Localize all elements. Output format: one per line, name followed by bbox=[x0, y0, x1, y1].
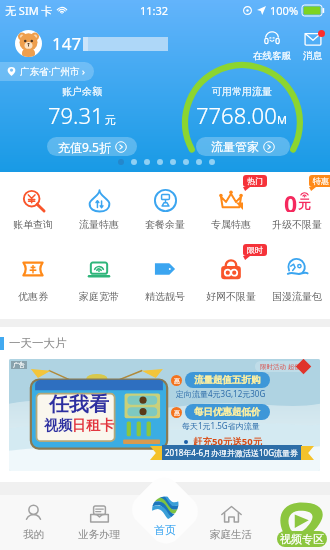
staticText: 首页 bbox=[154, 523, 176, 537]
staticText: 无 SIM 卡 bbox=[5, 3, 53, 18]
button[interactable]: 在线客服 bbox=[249, 30, 295, 62]
staticText: 充值9.5折 bbox=[58, 139, 111, 155]
other: 在线客服 bbox=[263, 30, 281, 48]
button[interactable]: 广告 bbox=[9, 359, 320, 471]
staticText: 好网不限量 bbox=[206, 290, 256, 303]
staticText: 家庭宽带 bbox=[79, 290, 119, 303]
staticText: 可用常用流量 bbox=[212, 85, 272, 98]
button[interactable]: 限时 bbox=[198, 257, 264, 303]
other: 视频专区 bbox=[276, 500, 328, 545]
staticText: 惠 bbox=[174, 409, 180, 417]
button[interactable]: 国漫流量包 bbox=[264, 257, 330, 303]
staticText: 国漫流量包 bbox=[272, 290, 322, 303]
button[interactable]: 家庭生活 bbox=[198, 495, 264, 550]
button[interactable]: 家庭宽带 bbox=[66, 257, 132, 303]
staticText: 元 bbox=[105, 113, 116, 127]
staticText: 业务办理 bbox=[78, 528, 120, 541]
staticText: 赶充50元送50元 bbox=[193, 435, 263, 448]
staticText: 元 bbox=[298, 196, 311, 212]
staticText: 账户余额 bbox=[62, 85, 102, 98]
staticText: 惠 bbox=[174, 377, 180, 385]
staticText: 每日优惠超低价 bbox=[194, 406, 261, 418]
staticText: 我的 bbox=[23, 528, 44, 541]
staticText: 热门 bbox=[247, 176, 263, 186]
button[interactable]: 优惠券 bbox=[0, 257, 66, 303]
button[interactable]: 首页 bbox=[137, 495, 193, 537]
staticText: 11:32 bbox=[140, 3, 169, 18]
staticText: 专属特惠 bbox=[211, 218, 251, 231]
staticText: 消息 bbox=[303, 50, 322, 62]
staticText: 升级不限量 bbox=[272, 218, 322, 231]
staticText: 套餐余量 bbox=[145, 218, 185, 231]
staticText: 147 bbox=[52, 32, 82, 55]
staticText: 0 bbox=[284, 188, 298, 212]
staticText: 7768.00 bbox=[196, 100, 277, 130]
staticText: 在线客服 bbox=[253, 50, 291, 62]
staticText: 每天1元1.5G省内流量 bbox=[182, 420, 260, 431]
button[interactable]: 消息 bbox=[299, 30, 326, 62]
staticText: 特惠 bbox=[313, 176, 329, 186]
staticText: 一天一大片 bbox=[9, 336, 67, 350]
staticText: 日租卡 bbox=[72, 417, 114, 435]
button[interactable]: 广东省·广州市 › bbox=[0, 62, 94, 81]
staticText: 流量特惠 bbox=[79, 218, 119, 231]
button[interactable]: 精选靓号 bbox=[132, 257, 198, 303]
staticText: 视频专区 bbox=[280, 532, 324, 546]
staticText: 视频 bbox=[44, 417, 72, 435]
button[interactable]: 充值9.5折 bbox=[47, 137, 137, 156]
button[interactable]: 业务办理 bbox=[66, 495, 132, 550]
staticText: 79.31 bbox=[48, 100, 104, 130]
staticText: M bbox=[277, 112, 287, 127]
staticText: 家庭生活 bbox=[210, 528, 252, 541]
staticText: 2018年4-6月办理并激活送10G流量券 bbox=[165, 447, 299, 458]
button[interactable]: 账单查询 bbox=[0, 188, 66, 231]
button[interactable]: 我的 bbox=[0, 495, 66, 550]
button[interactable]: 流量管家 bbox=[196, 137, 290, 156]
other: 消息 bbox=[304, 30, 322, 48]
button[interactable]: 套餐余量 bbox=[132, 188, 198, 231]
staticText: 定向流量4元3G,12元30G bbox=[176, 388, 266, 399]
button[interactable]: 0 bbox=[264, 188, 330, 231]
button[interactable]: 热门 bbox=[198, 188, 264, 231]
button[interactable]: 流量特惠 bbox=[66, 188, 132, 231]
staticText: 广东省·广州市 › bbox=[20, 65, 85, 78]
staticText: 100% bbox=[270, 3, 299, 18]
staticText: 精选靓号 bbox=[145, 290, 185, 303]
staticText: 账单查询 bbox=[13, 218, 53, 231]
staticText: 流量管家 bbox=[211, 139, 259, 154]
staticText: 任我看 bbox=[49, 392, 109, 417]
button[interactable]: 视频专区 bbox=[276, 500, 328, 545]
staticText: 限时活动 超值 bbox=[260, 362, 301, 371]
staticText: 流量超值五折购 bbox=[194, 374, 261, 386]
staticText: 优惠券 bbox=[18, 290, 48, 303]
staticText: 广告 bbox=[13, 361, 25, 369]
staticText: 限时 bbox=[247, 245, 263, 255]
